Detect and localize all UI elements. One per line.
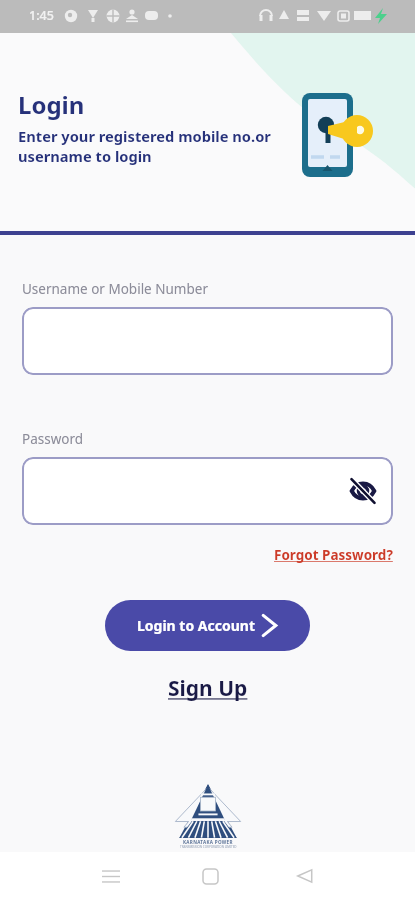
button[interactable]: Password field bbox=[22, 457, 393, 525]
button[interactable]: Recent apps bbox=[87, 852, 135, 900]
button[interactable]: Show password bbox=[345, 473, 381, 509]
staticText: Login bbox=[18, 88, 85, 121]
button[interactable]: Username or Mobile Number field bbox=[22, 307, 393, 375]
staticText: Enter your registered mobile no.or usern… bbox=[18, 126, 271, 167]
staticText: Login to Account bbox=[137, 616, 255, 635]
staticText: 1:45 bbox=[29, 7, 54, 24]
staticText: KARNATAKA POWER bbox=[183, 839, 233, 845]
staticText: Forgot Password? bbox=[274, 546, 393, 564]
staticText: TRANSMISSION CORPORATION LIMITED bbox=[180, 845, 237, 849]
button[interactable]: Sign Up bbox=[168, 674, 248, 703]
button[interactable]: Back bbox=[281, 852, 329, 900]
staticText: Username or Mobile Number bbox=[22, 280, 208, 298]
button[interactable]: Login to Account bbox=[105, 600, 310, 651]
button[interactable]: Home bbox=[186, 852, 234, 900]
staticText: Sign Up bbox=[168, 674, 248, 703]
button[interactable]: Forgot Password? bbox=[274, 546, 393, 564]
staticText: Password bbox=[22, 430, 84, 448]
